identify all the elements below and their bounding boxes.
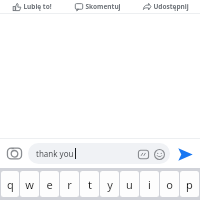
button[interactable]: Skomentuj xyxy=(64,0,132,13)
button[interactable]: Lubię to! xyxy=(0,0,64,13)
staticText: e xyxy=(46,177,53,192)
staticText: w xyxy=(25,177,34,192)
button[interactable]: p xyxy=(180,171,199,197)
button[interactable]: Emoji xyxy=(152,147,166,161)
staticText: o xyxy=(166,177,173,192)
button[interactable]: thank you xyxy=(28,143,170,164)
button[interactable]: GIF xyxy=(136,147,150,161)
staticText: t xyxy=(88,177,92,192)
staticText: Lubię to! xyxy=(23,2,52,11)
button[interactable]: t xyxy=(80,171,99,197)
staticText: Skomentuj xyxy=(85,2,121,11)
button[interactable]: w xyxy=(20,171,39,197)
button[interactable]: Camera xyxy=(4,143,25,164)
staticText: r xyxy=(67,177,72,192)
staticText: q xyxy=(7,177,14,192)
button[interactable]: q xyxy=(1,171,19,197)
staticText: u xyxy=(126,177,133,192)
button[interactable]: y xyxy=(100,171,119,197)
button[interactable]: r xyxy=(60,171,79,197)
button[interactable]: o xyxy=(160,171,179,197)
button[interactable]: e xyxy=(40,171,59,197)
staticText: Udostępnij xyxy=(153,2,189,11)
button[interactable]: Udostępnij xyxy=(132,0,200,13)
button[interactable]: u xyxy=(120,171,139,197)
staticText: y xyxy=(107,177,113,192)
staticText: thank you xyxy=(36,148,74,159)
button[interactable]: i xyxy=(140,171,159,197)
staticText: p xyxy=(186,177,193,192)
button[interactable]: Send xyxy=(174,143,196,165)
staticText: i xyxy=(148,177,151,192)
